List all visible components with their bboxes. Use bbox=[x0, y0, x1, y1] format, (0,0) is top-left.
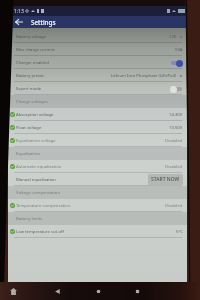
staticText: Disabled bbox=[165, 203, 183, 209]
staticText: Voltage compensation bbox=[16, 190, 60, 196]
staticText: Battery preset bbox=[16, 73, 44, 79]
button[interactable]: Expert mode bbox=[8, 82, 187, 95]
staticText: Temperature compensation bbox=[16, 203, 71, 209]
staticText: Charger enabled bbox=[16, 60, 49, 66]
staticText: Disabled bbox=[165, 138, 183, 144]
staticText: Equalization voltage bbox=[16, 138, 56, 144]
staticText: Lithium Iron Phosphate (LiFePo4) bbox=[111, 73, 177, 79]
staticText: 13.50V bbox=[169, 125, 183, 131]
staticText: Equalization bbox=[16, 151, 41, 157]
staticText: 50A bbox=[175, 47, 183, 53]
button[interactable]: Equalization voltage bbox=[8, 134, 187, 147]
staticText: START NOW bbox=[151, 176, 180, 183]
button[interactable]: Recents bbox=[131, 285, 144, 298]
staticText: Low temperature cut-off bbox=[16, 229, 64, 235]
button[interactable]: Back bbox=[13, 16, 25, 28]
staticText: 14.30V bbox=[169, 112, 183, 118]
button[interactable]: Max charge current bbox=[8, 43, 187, 56]
button[interactable]: Charger enabled bbox=[8, 56, 187, 69]
button[interactable]: Low temperature cut-off bbox=[8, 225, 187, 238]
button[interactable]: Battery voltage bbox=[8, 30, 187, 43]
staticText: Expert mode bbox=[16, 86, 42, 92]
button[interactable]: Battery preset bbox=[8, 69, 187, 82]
staticText: 12V bbox=[169, 34, 177, 40]
button[interactable]: Temperature compensation bbox=[8, 199, 187, 212]
staticText: Manual equalisation bbox=[16, 177, 56, 183]
button[interactable]: Home screen bbox=[92, 285, 105, 298]
staticText: Automatic equalisation bbox=[16, 164, 62, 170]
staticText: Battery voltage bbox=[16, 34, 46, 40]
button[interactable]: Back bbox=[51, 285, 64, 298]
staticText: Absorption voltage bbox=[16, 112, 54, 118]
staticText: Settings bbox=[31, 18, 56, 27]
button[interactable]: Float voltage bbox=[8, 121, 187, 134]
button[interactable]: Home bbox=[7, 285, 20, 298]
staticText: 11:13 bbox=[11, 8, 24, 15]
staticText: Max charge current bbox=[16, 47, 55, 53]
staticText: Float voltage bbox=[16, 125, 42, 131]
button[interactable]: Automatic equalisation bbox=[8, 160, 187, 173]
staticText: 5°C bbox=[176, 229, 183, 235]
staticText: Disabled bbox=[165, 164, 183, 170]
button[interactable]: START NOW bbox=[148, 174, 183, 185]
staticText: Battery limits bbox=[16, 216, 43, 222]
button[interactable]: Absorption voltage bbox=[8, 108, 187, 121]
staticText: Charge voltages bbox=[16, 99, 48, 105]
